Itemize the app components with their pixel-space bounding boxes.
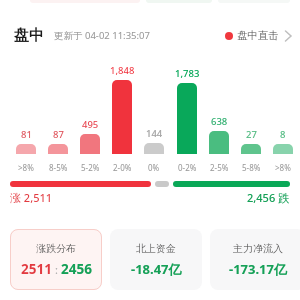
staticText: 盘中 <box>14 26 44 45</box>
staticText: 8 <box>280 128 286 141</box>
staticText: 2,456 跌 <box>247 190 290 205</box>
staticText: 2-0% <box>113 162 132 173</box>
staticText: >8% <box>275 162 291 173</box>
staticText: 0-2% <box>178 162 197 173</box>
staticText: 8-5% <box>49 162 68 173</box>
staticText: 2-5% <box>210 162 229 173</box>
staticText: 涨 2,511 <box>10 190 53 205</box>
staticText: 2511 <box>21 260 52 278</box>
staticText: 主力净流入 <box>233 242 283 255</box>
staticText: : <box>55 262 58 277</box>
staticText: 2456 <box>61 260 92 278</box>
staticText: >8% <box>18 162 34 173</box>
button[interactable]: 北上资金 <box>110 229 202 290</box>
staticText: 144 <box>146 127 163 140</box>
staticText: 盘中直击 <box>237 29 279 42</box>
button[interactable]: 主力净流入 <box>210 229 300 290</box>
staticText: 0% <box>148 162 160 173</box>
staticText: 5-8% <box>242 162 261 173</box>
staticText: 1,848 <box>110 64 135 77</box>
button[interactable]: 涨跌分布 <box>10 229 102 290</box>
button[interactable]: 盘中直击 <box>225 29 292 42</box>
staticText: 81 <box>21 128 32 141</box>
staticText: 27 <box>246 128 257 141</box>
staticText: 87 <box>53 128 64 141</box>
staticText: -173.17亿 <box>229 260 287 278</box>
staticText: 北上资金 <box>136 242 176 255</box>
staticText: 638 <box>211 115 228 128</box>
staticText: 495 <box>82 118 99 131</box>
staticText: 更新于 04-02 11:35:07 <box>54 29 150 42</box>
staticText: 1,783 <box>175 67 200 80</box>
staticText: -18.47亿 <box>131 260 182 278</box>
staticText: 5-2% <box>81 162 100 173</box>
staticText: 涨跌分布 <box>36 242 76 255</box>
